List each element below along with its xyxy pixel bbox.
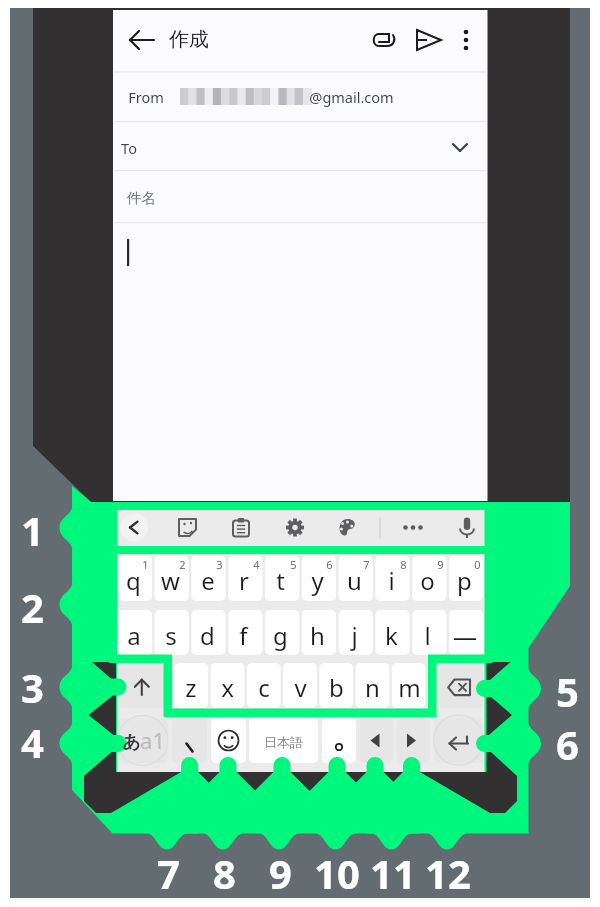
staticText: j [351,619,358,652]
staticText: b [329,671,344,704]
staticText: q [126,564,141,597]
staticText: To [121,138,137,158]
staticText: 1 [21,503,44,553]
staticText: 3 [21,660,44,710]
staticText: h [310,619,325,652]
staticText: w [161,564,180,597]
staticText: 9 [269,846,292,896]
staticText: c [258,671,270,704]
staticText: y [311,564,324,597]
staticText: あ [122,731,141,754]
staticText: g [273,619,288,652]
staticText: r [239,564,249,597]
staticText: 6 [326,557,333,571]
staticText: a [127,619,141,652]
staticText: u [347,564,362,597]
staticText: 0 [474,557,481,571]
staticText: x [221,671,234,704]
staticText: l [424,619,431,652]
staticText: 7 [363,557,370,571]
staticText: s [165,619,177,652]
staticText: n [365,671,380,704]
staticText: m [398,671,421,704]
staticText: 10 [314,846,360,896]
staticText: 日本語 [264,734,303,750]
staticText: 件名 [127,189,156,207]
staticText: 5 [290,557,297,571]
staticText: 4 [21,715,44,765]
staticText: 12 [425,846,471,896]
staticText: From [128,87,164,107]
staticText: k [385,619,398,652]
staticText: 3 [216,557,223,571]
staticText: 8 [400,557,407,571]
staticText: e [201,564,215,597]
staticText: 5 [556,664,579,714]
staticText: 8 [213,846,236,896]
staticText: 1 [142,557,149,571]
staticText: d [200,619,215,652]
staticText: 4 [253,557,260,571]
staticText: f [239,619,248,652]
staticText: 2 [179,557,186,571]
staticText: 7 [157,846,180,896]
staticText: 9 [437,557,444,571]
staticText: v [294,671,307,704]
staticText: 6 [556,717,579,767]
staticText: i [388,564,395,597]
staticText: — [453,619,477,652]
staticText: 作成 [169,27,209,52]
staticText: p [457,564,472,597]
staticText: a1 [140,725,165,755]
staticText: 2 [21,580,44,630]
staticText: z [185,671,197,704]
staticText: 11 [370,846,416,896]
staticText: @gmail.com [309,87,394,107]
staticText: o [420,564,435,597]
staticText: t [276,564,285,597]
